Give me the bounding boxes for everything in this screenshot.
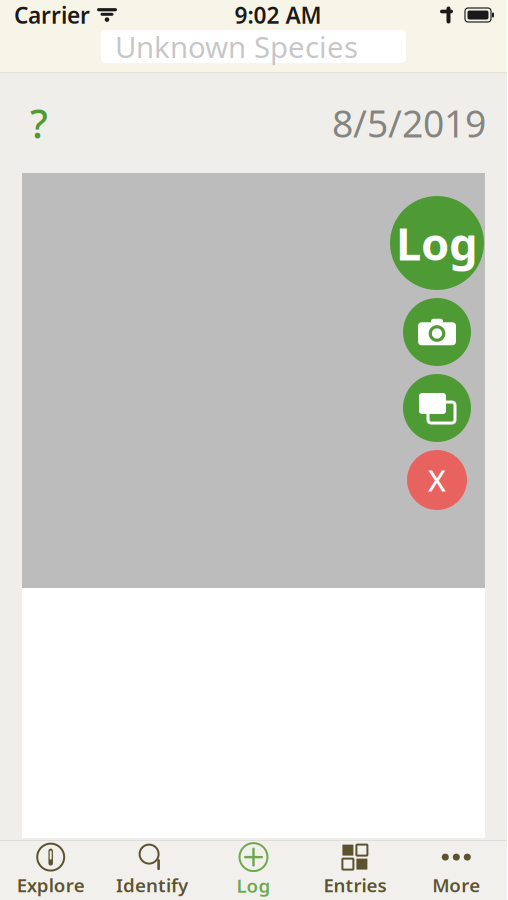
staticText: Identify bbox=[116, 873, 188, 897]
staticText: Carrier bbox=[14, 0, 90, 30]
staticText: 8/5/2019 bbox=[332, 98, 486, 148]
staticText: ? bbox=[30, 96, 48, 149]
staticText: Explore bbox=[17, 873, 85, 897]
staticText: Unknown Species bbox=[115, 27, 358, 66]
staticText: Entries bbox=[323, 873, 386, 897]
button[interactable]: Choose from Library bbox=[403, 374, 471, 442]
button[interactable]: Help bbox=[22, 103, 56, 143]
staticText: 9:02 AM bbox=[234, 0, 321, 30]
button[interactable]: Log bbox=[390, 196, 484, 290]
staticText: Log bbox=[236, 873, 270, 898]
button[interactable]: Take Photo bbox=[403, 298, 471, 366]
button[interactable]: Identify bbox=[101, 838, 203, 900]
button[interactable]: Unknown Species bbox=[101, 30, 406, 63]
button[interactable]: More bbox=[406, 838, 507, 900]
staticText: X bbox=[428, 460, 446, 499]
button[interactable]: Log bbox=[203, 837, 304, 900]
button[interactable]: Explore bbox=[0, 838, 101, 900]
staticText: More bbox=[432, 873, 480, 897]
staticText: Log bbox=[396, 213, 478, 273]
button[interactable]: Entries bbox=[304, 838, 406, 900]
button[interactable]: Cancel bbox=[407, 450, 467, 510]
